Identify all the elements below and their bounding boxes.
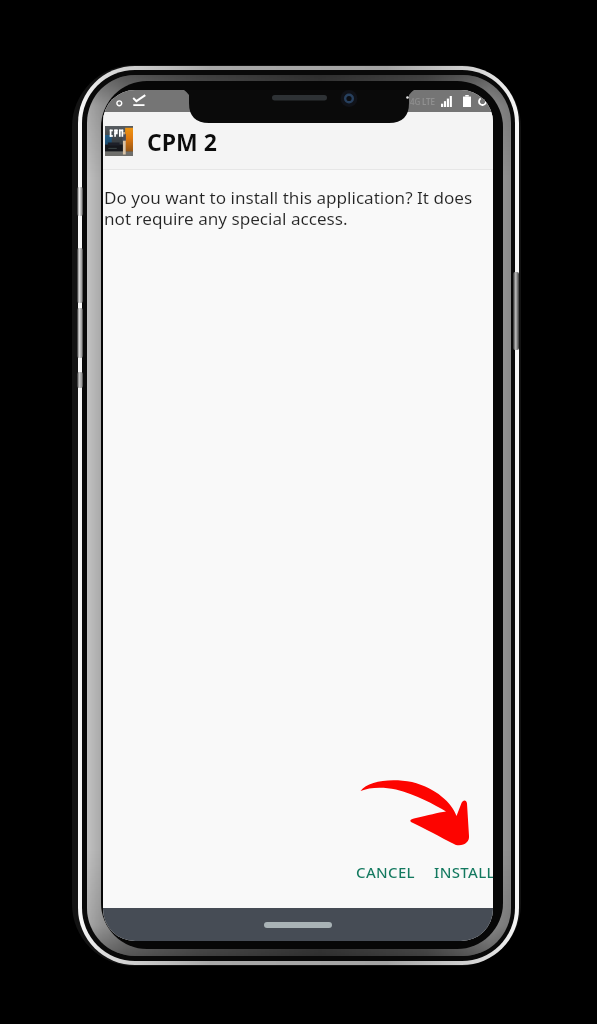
button[interactable]: Home — [264, 922, 332, 928]
staticText: CANCEL — [356, 862, 415, 882]
button[interactable]: CANCEL — [347, 856, 424, 888]
staticText: CPM 2 — [147, 126, 217, 157]
staticText: INSTALL — [434, 862, 493, 882]
staticText: Do you want to install this application?… — [104, 186, 482, 230]
button[interactable]: INSTALL — [425, 856, 493, 888]
staticText: LTE — [422, 96, 436, 107]
staticText: 4G — [410, 96, 421, 107]
